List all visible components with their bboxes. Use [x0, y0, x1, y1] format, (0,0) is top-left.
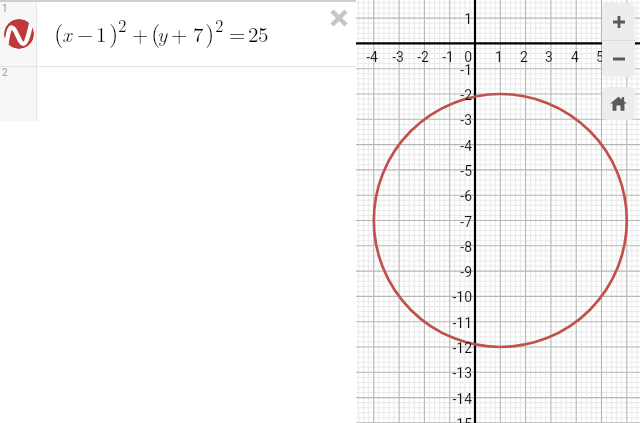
button[interactable]: Toggle graph visibility [3, 18, 34, 49]
staticText: 1 [96, 18, 107, 48]
staticText: -3 [460, 112, 472, 128]
staticText: -6 [460, 188, 472, 204]
staticText: 4 [571, 49, 579, 65]
staticText: x [62, 18, 72, 48]
staticText: -3 [392, 49, 404, 65]
staticText: 2 [248, 18, 259, 48]
staticText: -14 [452, 391, 472, 407]
staticText: ) [109, 15, 119, 49]
staticText: = [229, 18, 246, 48]
staticText: + [171, 18, 188, 48]
staticText: 1 [464, 11, 472, 27]
staticText: -15 [452, 416, 472, 423]
staticText: 7 [193, 18, 204, 48]
staticText: 0 [464, 49, 472, 65]
staticText: -5 [460, 163, 472, 179]
staticText: 2 [520, 49, 528, 65]
staticText: 5 [596, 49, 604, 65]
staticText: -11 [452, 315, 472, 331]
staticText: 2 [118, 13, 127, 37]
button[interactable]: Delete expression [325, 4, 352, 31]
staticText: -1 [442, 49, 454, 65]
staticText: -4 [460, 138, 472, 154]
staticText: + [132, 18, 149, 48]
staticText: 1 [495, 49, 503, 65]
staticText: -1 [460, 62, 472, 78]
staticText: -9 [460, 264, 472, 280]
staticText: − [77, 18, 94, 48]
staticText: -10 [452, 289, 472, 305]
button[interactable]: Zoom in [602, 3, 635, 40]
staticText: ( [54, 15, 64, 49]
button[interactable]: Default view [602, 87, 635, 120]
staticText: 1 [2, 3, 8, 15]
staticText: -13 [452, 365, 472, 381]
staticText: 5 [258, 18, 269, 48]
staticText: -2 [417, 49, 429, 65]
staticText: -7 [460, 214, 472, 230]
staticText: y [157, 18, 168, 48]
staticText: -2 [460, 87, 472, 103]
staticText: -8 [460, 239, 472, 255]
staticText: 3 [545, 49, 553, 65]
staticText: -12 [452, 340, 472, 356]
staticText: ( [151, 15, 161, 49]
staticText: 2 [215, 13, 224, 37]
staticText: -4 [366, 49, 378, 65]
staticText: ) [205, 15, 215, 49]
button[interactable]: Zoom out [602, 41, 635, 77]
staticText: 2 [2, 67, 8, 79]
